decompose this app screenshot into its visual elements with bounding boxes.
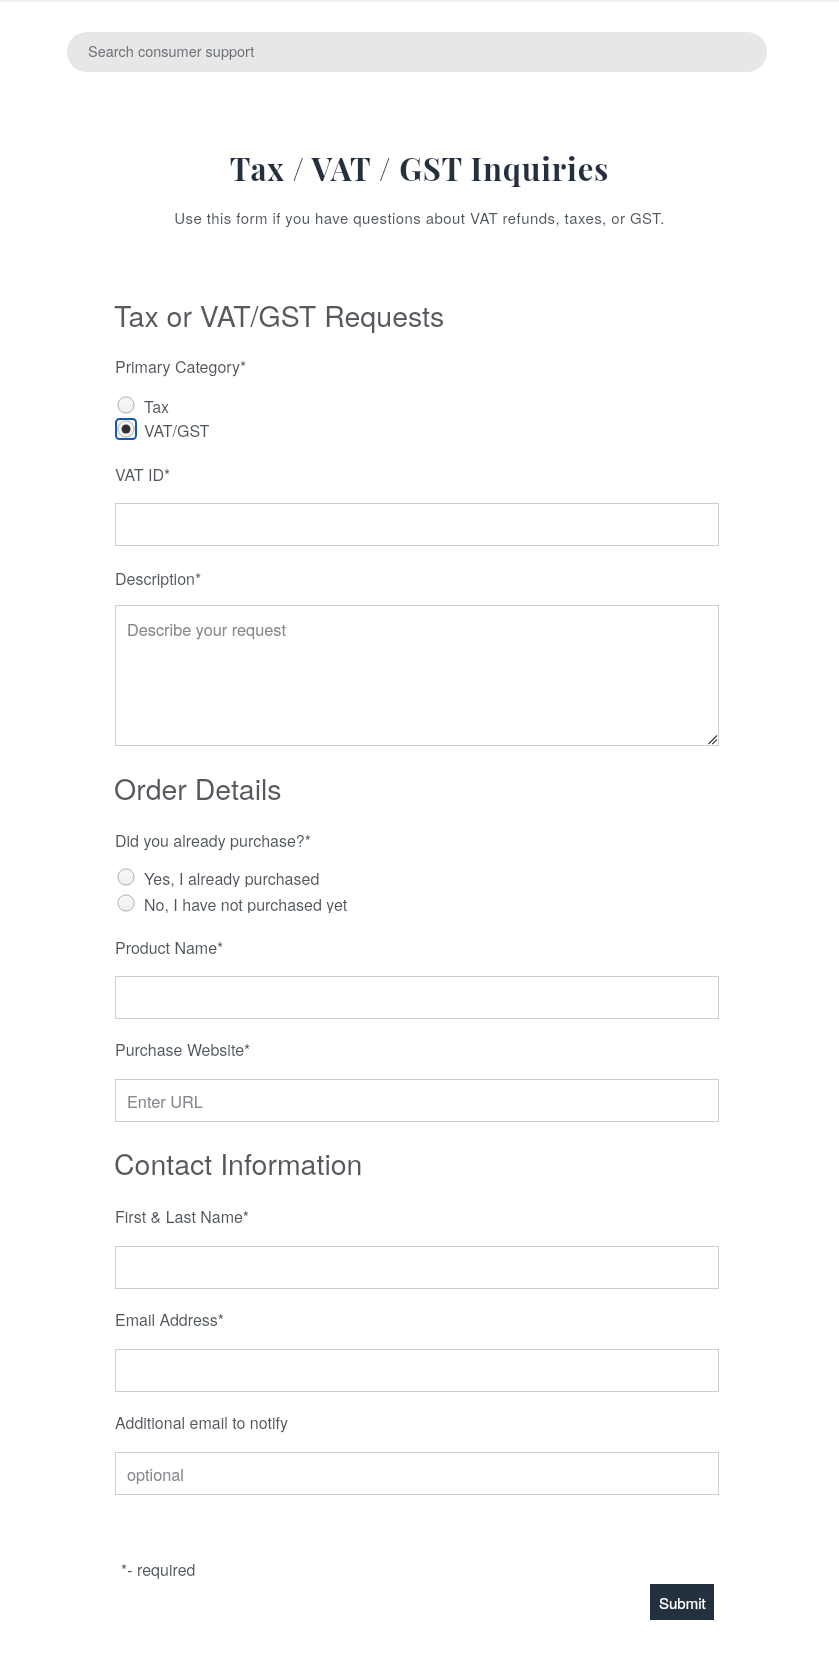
staticText: Description* <box>115 567 202 590</box>
staticText: optional <box>127 1462 184 1485</box>
staticText: Did you already purchase?* <box>115 829 311 852</box>
button[interactable]: Submit <box>650 1584 714 1620</box>
staticText: Describe your request <box>127 617 286 640</box>
button[interactable]: Email Address <box>115 1349 719 1392</box>
button[interactable]: VAT ID <box>115 503 719 546</box>
button[interactable]: Product Name <box>115 976 719 1019</box>
other: VAT/GST <box>116 419 136 439</box>
staticText: Enter URL <box>127 1089 203 1112</box>
staticText: Tax <box>144 395 170 415</box>
other: No, I have not purchased yet <box>116 893 136 913</box>
button[interactable]: No, I have not purchased yet <box>116 893 348 913</box>
staticText: Tax / VAT / GST Inquiries <box>0 147 839 188</box>
staticText: Product Name* <box>115 936 224 959</box>
staticText: Email Address* <box>115 1308 225 1331</box>
staticText: Tax or VAT/GST Requests <box>114 294 445 335</box>
staticText: Primary Category* <box>115 355 247 378</box>
button[interactable]: Purchase Website <box>115 1079 719 1122</box>
other: Yes, I already purchased <box>116 867 136 887</box>
staticText: Order Details <box>114 767 282 808</box>
staticText: Search consumer support <box>88 40 255 61</box>
button[interactable]: Description <box>115 605 719 746</box>
button[interactable]: Yes, I already purchased <box>116 867 320 887</box>
staticText: Use this form if you have questions abou… <box>0 207 839 228</box>
other: Tax <box>116 395 136 415</box>
button[interactable]: VAT/GST <box>116 419 210 439</box>
staticText: VAT/GST <box>144 419 210 439</box>
staticText: VAT ID* <box>115 463 171 486</box>
button[interactable]: Additional email to notify <box>115 1452 719 1495</box>
staticText: No, I have not purchased yet <box>144 893 348 913</box>
staticText: Yes, I already purchased <box>144 867 320 887</box>
staticText: *- required <box>121 1558 196 1581</box>
staticText: Purchase Website* <box>115 1038 251 1061</box>
staticText: First & Last Name* <box>115 1205 250 1228</box>
button[interactable]: Search consumer support <box>67 32 767 72</box>
staticText: Submit <box>659 1592 706 1613</box>
staticText: Contact Information <box>114 1142 363 1183</box>
button[interactable]: First & Last Name <box>115 1246 719 1289</box>
staticText: Additional email to notify <box>115 1411 288 1434</box>
button[interactable]: Tax <box>116 395 170 415</box>
